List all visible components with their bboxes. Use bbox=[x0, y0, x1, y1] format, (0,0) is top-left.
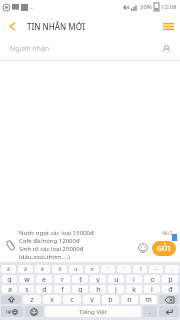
staticText: x bbox=[50, 295, 54, 304]
button[interactable]: h bbox=[90, 285, 106, 293]
button[interactable]: l bbox=[144, 285, 160, 293]
staticText: w bbox=[24, 275, 30, 283]
staticText: Cafe đá/nóng 12000đ bbox=[19, 237, 80, 245]
staticText: ô bbox=[58, 266, 62, 273]
button[interactable]: Menu bbox=[156, 14, 180, 38]
staticText: d bbox=[42, 285, 47, 293]
button[interactable]: . bbox=[165, 265, 179, 273]
staticText: k bbox=[132, 285, 136, 293]
button[interactable]: ~ bbox=[149, 265, 163, 273]
staticText: ´ bbox=[107, 266, 109, 273]
staticText: s bbox=[25, 285, 29, 293]
staticText: e bbox=[42, 275, 46, 283]
staticText: h bbox=[96, 285, 101, 293]
staticText: ~ bbox=[155, 266, 158, 273]
button[interactable]: f bbox=[54, 285, 70, 293]
staticText: b bbox=[108, 295, 113, 304]
staticText: g bbox=[78, 285, 83, 293]
button[interactable]: o bbox=[144, 275, 160, 283]
staticText: ư bbox=[74, 266, 78, 273]
button[interactable]: ư bbox=[69, 265, 83, 273]
button[interactable]: ơ bbox=[85, 265, 99, 273]
button[interactable]: s bbox=[19, 285, 34, 293]
button[interactable]: Backspace bbox=[159, 295, 179, 304]
button[interactable]: t bbox=[72, 275, 88, 283]
button[interactable]: p bbox=[162, 275, 178, 283]
button[interactable]: w bbox=[19, 275, 34, 283]
staticText: ă bbox=[7, 266, 10, 273]
staticText: n bbox=[127, 295, 132, 304]
button[interactable]: ă bbox=[1, 265, 16, 273]
button[interactable]: GỬI bbox=[152, 241, 176, 256]
button[interactable]: đ bbox=[162, 285, 178, 293]
button[interactable]: e bbox=[36, 275, 52, 283]
staticText: (dâu,xoài,thơm,...) bbox=[19, 253, 70, 261]
staticText: a bbox=[8, 285, 12, 293]
staticText: 12:08 bbox=[161, 3, 177, 11]
button[interactable]: Shift bbox=[1, 295, 21, 304]
button[interactable]: b bbox=[102, 295, 119, 304]
button[interactable]: u bbox=[108, 275, 124, 283]
button[interactable]: Emoji bbox=[135, 240, 151, 256]
button[interactable]: ? bbox=[133, 265, 147, 273]
staticText: 30% bbox=[140, 3, 152, 11]
button[interactable]: j bbox=[108, 285, 124, 293]
staticText: u bbox=[114, 275, 119, 283]
staticText: Nước ngọt các loại 15000đ bbox=[19, 229, 94, 237]
staticText: f bbox=[61, 285, 64, 293]
staticText: ơ bbox=[90, 266, 94, 273]
button[interactable]: m bbox=[140, 295, 157, 304]
staticText: y bbox=[96, 275, 100, 283]
button[interactable]: ô bbox=[52, 265, 67, 273]
button[interactable]: a bbox=[2, 285, 17, 293]
staticText: q bbox=[7, 275, 12, 283]
button[interactable]: x bbox=[43, 295, 61, 304]
staticText: t bbox=[79, 275, 82, 283]
button[interactable]: Add contact bbox=[158, 41, 174, 57]
button[interactable]: q bbox=[2, 275, 17, 283]
staticText: Sinh tố các loại 25000đ bbox=[19, 245, 84, 253]
button[interactable]: g bbox=[72, 285, 88, 293]
button[interactable]: v bbox=[83, 295, 100, 304]
staticText: i bbox=[133, 275, 135, 283]
staticText: . bbox=[171, 266, 173, 273]
staticText: TIN NHẮN MỚI bbox=[27, 21, 86, 32]
button[interactable]: Enter bbox=[159, 306, 179, 317]
button[interactable]: ê bbox=[35, 265, 50, 273]
staticText: Người nhận bbox=[10, 44, 50, 54]
button[interactable]: Back bbox=[0, 14, 24, 38]
staticText: r bbox=[61, 275, 64, 283]
staticText: m bbox=[145, 295, 152, 304]
button[interactable]: Period bbox=[143, 306, 157, 317]
staticText: đ bbox=[168, 285, 173, 293]
button[interactable]: n bbox=[121, 295, 138, 304]
staticText: v bbox=[90, 295, 94, 304]
button[interactable]: d bbox=[36, 285, 52, 293]
button[interactable]: Người nhận bbox=[0, 38, 180, 60]
button[interactable]: k bbox=[126, 285, 142, 293]
staticText: â bbox=[24, 266, 27, 273]
button[interactable]: Tiếng Việt bbox=[45, 306, 141, 317]
button[interactable]: Symbols bbox=[1, 306, 23, 317]
button[interactable]: Attach bbox=[1, 236, 19, 254]
staticText: . bbox=[149, 307, 151, 317]
staticText: ` bbox=[123, 266, 125, 273]
staticText: c bbox=[70, 295, 74, 304]
button[interactable]: i bbox=[126, 275, 142, 283]
staticText: j bbox=[115, 285, 117, 293]
button[interactable]: z bbox=[23, 295, 41, 304]
staticText: p bbox=[168, 275, 173, 283]
staticText: Tiếng Việt bbox=[79, 308, 107, 316]
button[interactable]: Emoji keyboard bbox=[25, 306, 43, 317]
button[interactable]: c bbox=[63, 295, 81, 304]
button[interactable]: ´ bbox=[101, 265, 115, 273]
button[interactable]: r bbox=[54, 275, 70, 283]
button[interactable]: â bbox=[18, 265, 33, 273]
staticText: GỬI bbox=[157, 244, 171, 254]
staticText: o bbox=[150, 275, 155, 283]
button[interactable]: y bbox=[90, 275, 106, 283]
button[interactable]: ` bbox=[117, 265, 131, 273]
staticText: z bbox=[30, 295, 34, 304]
staticText: l bbox=[151, 285, 153, 293]
staticText: !# bbox=[6, 308, 12, 316]
